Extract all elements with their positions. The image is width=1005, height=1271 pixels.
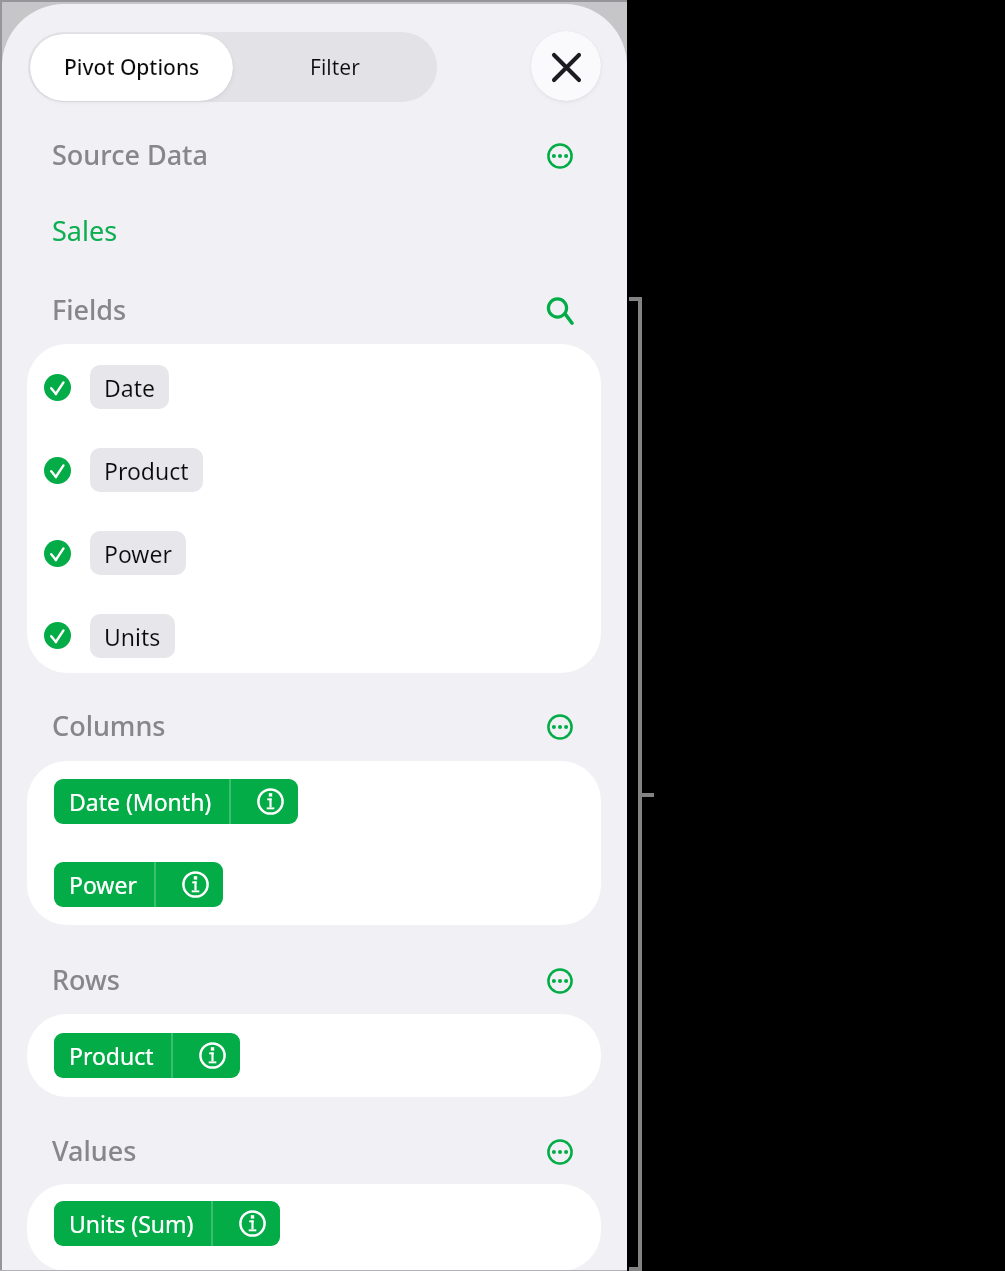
button[interactable]: Search <box>534 285 586 337</box>
staticText: Power <box>69 869 137 900</box>
button[interactable]: Close <box>531 31 601 101</box>
button[interactable] <box>27 512 601 594</box>
button[interactable]: More options <box>534 130 586 182</box>
staticText: Product <box>69 1040 154 1071</box>
staticText: Pivot Options <box>64 53 200 82</box>
staticText: Units (Sum) <box>69 1208 194 1239</box>
button[interactable]: Date (Month) <box>54 779 298 824</box>
staticText: Units <box>104 621 161 652</box>
staticText: Product <box>104 455 189 486</box>
button[interactable]: More options <box>534 1126 586 1178</box>
button[interactable]: Product <box>54 1033 240 1078</box>
button[interactable]: Power <box>54 862 223 907</box>
staticText: Values <box>52 1132 137 1169</box>
staticText: Columns <box>52 707 166 744</box>
staticText: Date (Month) <box>69 786 212 817</box>
staticText: Source Data <box>52 136 208 173</box>
staticText: Power <box>104 538 172 569</box>
staticText: Sales <box>52 212 118 249</box>
button[interactable]: Units (Sum) <box>54 1201 280 1246</box>
button[interactable]: More options <box>534 955 586 1007</box>
button[interactable] <box>27 595 601 677</box>
button[interactable]: Pivot Options <box>30 34 233 101</box>
staticText: Date <box>104 372 155 403</box>
staticText: Fields <box>52 291 127 328</box>
button[interactable] <box>27 347 601 429</box>
button[interactable]: More options <box>534 701 586 753</box>
button[interactable]: Filter <box>233 32 437 102</box>
button[interactable] <box>27 429 601 511</box>
staticText: Rows <box>52 961 120 998</box>
staticText: Filter <box>310 53 360 82</box>
